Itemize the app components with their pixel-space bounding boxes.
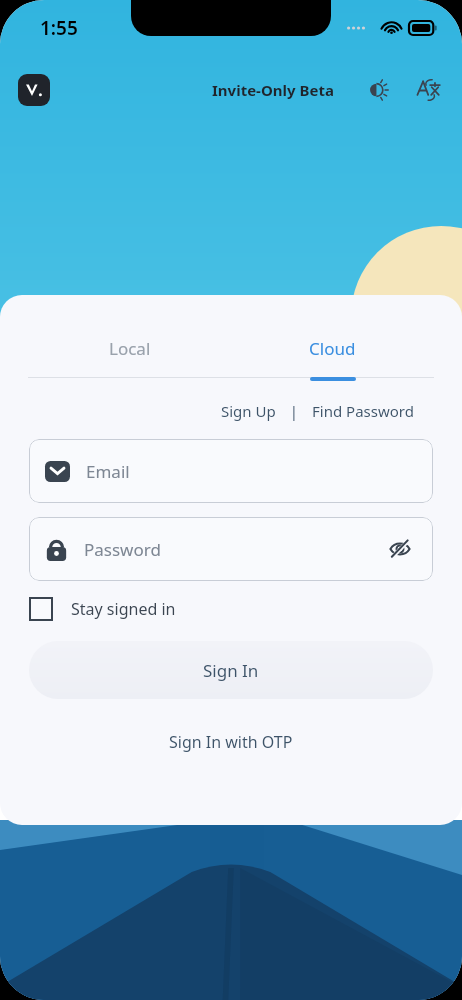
staticText: Password (84, 538, 383, 561)
button[interactable]: Stay signed in (29, 597, 462, 621)
staticText: 1:55 (40, 15, 78, 41)
staticText: Sign In with OTP (169, 731, 293, 753)
staticText: Local (109, 337, 151, 360)
staticText: Email (86, 460, 417, 483)
button[interactable]: Cloud (231, 329, 434, 368)
button[interactable]: Local (28, 329, 231, 368)
staticText: Invite-Only Beta (212, 80, 334, 100)
staticText: | (282, 401, 306, 421)
button[interactable]: Email (29, 439, 433, 503)
button[interactable]: Sign In (29, 641, 433, 699)
button[interactable]: Password (29, 517, 433, 581)
button[interactable]: Sign Up (215, 397, 282, 425)
staticText: Find Password (312, 401, 414, 421)
staticText: Sign Up (221, 401, 276, 421)
button[interactable]: Toggle theme (360, 72, 396, 108)
button[interactable]: Show password (383, 532, 417, 566)
button[interactable]: Translate (410, 72, 446, 108)
staticText: Cloud (309, 337, 356, 360)
button[interactable]: Find Password (306, 397, 420, 425)
staticText: Sign In (203, 659, 259, 682)
button[interactable]: Sign In with OTP (155, 725, 307, 759)
button[interactable]: App logo (18, 74, 50, 106)
staticText: Stay signed in (71, 598, 176, 620)
